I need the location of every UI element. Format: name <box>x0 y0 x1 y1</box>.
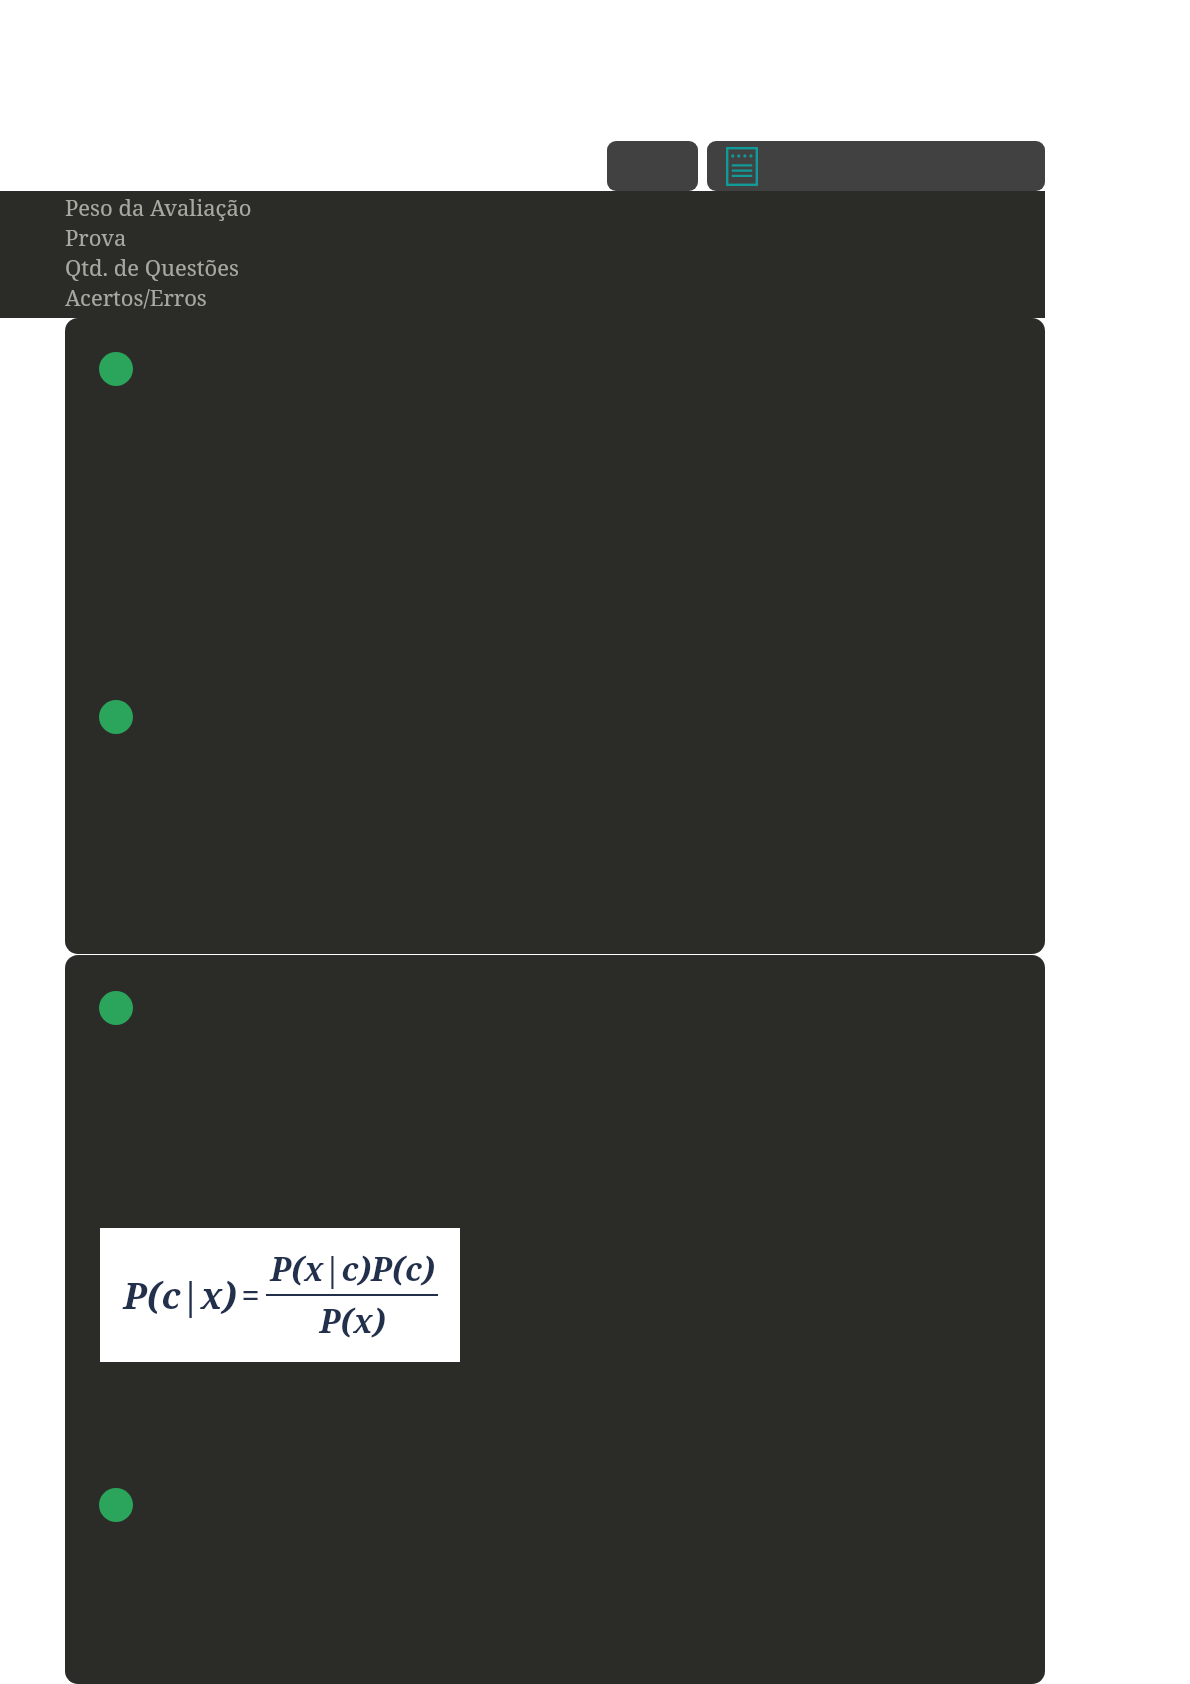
button[interactable]: P(c|x) <box>65 955 1045 1684</box>
staticText: Nota <box>65 312 115 319</box>
button[interactable] <box>65 318 1045 954</box>
button[interactable]: Documento <box>707 141 1045 191</box>
staticText: Prova <box>65 222 127 252</box>
staticText: Acertos/Erros <box>65 282 207 312</box>
button[interactable]: Voltar <box>607 141 698 191</box>
staticText: = <box>241 1273 260 1317</box>
staticText: Peso da Avaliação <box>65 192 252 222</box>
staticText: P(x) <box>319 1299 386 1343</box>
staticText: P(c|x) <box>123 1271 237 1320</box>
other: Documento <box>726 147 758 186</box>
staticText: Qtd. de Questões <box>65 252 239 282</box>
staticText: P(x|c)P(c) <box>270 1247 435 1291</box>
